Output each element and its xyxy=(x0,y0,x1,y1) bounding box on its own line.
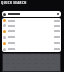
staticText: QUICK SEARCH xyxy=(1,1,27,5)
button[interactable] xyxy=(2,11,61,17)
button[interactable] xyxy=(2,23,61,28)
button[interactable] xyxy=(2,28,61,34)
button[interactable] xyxy=(2,40,61,46)
button[interactable] xyxy=(2,34,61,40)
button[interactable] xyxy=(2,18,61,23)
button[interactable] xyxy=(2,46,61,52)
